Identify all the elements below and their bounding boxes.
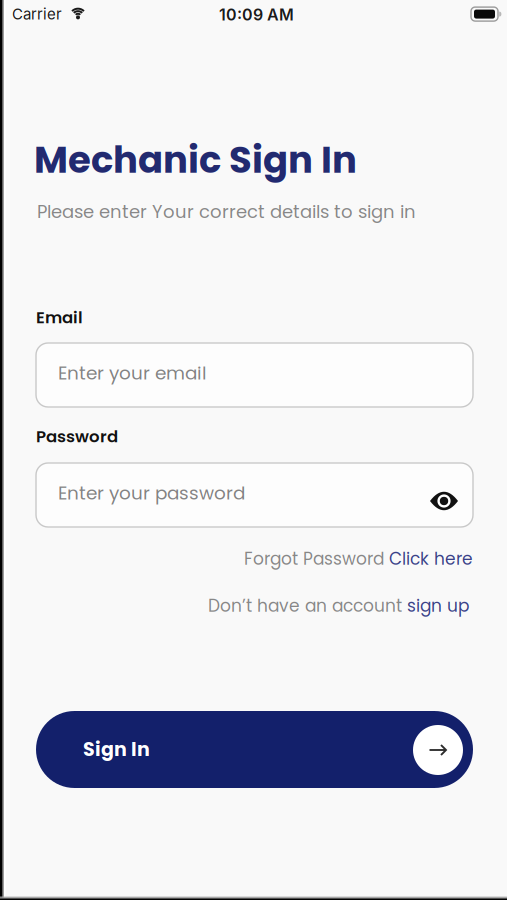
button[interactable]: [430, 486, 458, 504]
staticText: Enter your password: [58, 480, 245, 506]
button[interactable]: Sign In: [36, 711, 473, 788]
staticText: Mechanic Sign In: [34, 134, 357, 186]
button[interactable]: Enter your email: [36, 343, 473, 407]
button[interactable]: Click here: [389, 547, 473, 571]
staticText: Don’t have an account: [208, 594, 402, 618]
button[interactable]: sign up: [407, 594, 469, 618]
staticText: Please enter Your correct details to sig…: [37, 199, 416, 224]
staticText: sign up: [407, 594, 469, 618]
staticText: 10:09 AM: [219, 5, 294, 24]
staticText: Forgot Password: [244, 547, 384, 571]
staticText: Click here: [389, 547, 473, 571]
staticText: Email: [36, 306, 83, 329]
staticText: Password: [36, 425, 118, 448]
staticText: Carrier: [12, 5, 62, 23]
button[interactable]: Enter your password: [36, 463, 473, 527]
staticText: Enter your email: [58, 360, 207, 386]
staticText: Sign In: [83, 736, 150, 763]
